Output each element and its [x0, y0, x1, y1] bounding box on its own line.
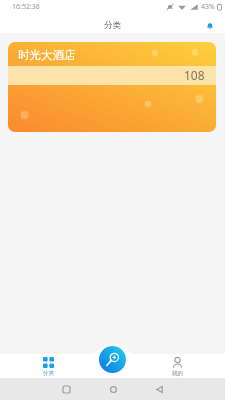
- button[interactable]: Recents: [57, 380, 75, 398]
- staticText: 43%: [201, 2, 215, 12]
- staticText: 我的: [172, 370, 183, 377]
- staticText: 108: [184, 67, 205, 83]
- button[interactable]: Back: [150, 380, 168, 398]
- button[interactable]: 分类: [33, 357, 63, 377]
- staticText: 分类: [104, 20, 121, 31]
- button[interactable]: 我的: [162, 357, 192, 377]
- staticText: 分类: [43, 370, 54, 377]
- button[interactable]: 时光大酒店: [8, 42, 216, 132]
- staticText: 16:52:36: [12, 2, 40, 12]
- button[interactable]: Home: [104, 380, 122, 398]
- staticText: 时光大酒店: [18, 48, 76, 62]
- button[interactable]: Search: [99, 346, 126, 373]
- button[interactable]: Notifications: [203, 19, 216, 32]
